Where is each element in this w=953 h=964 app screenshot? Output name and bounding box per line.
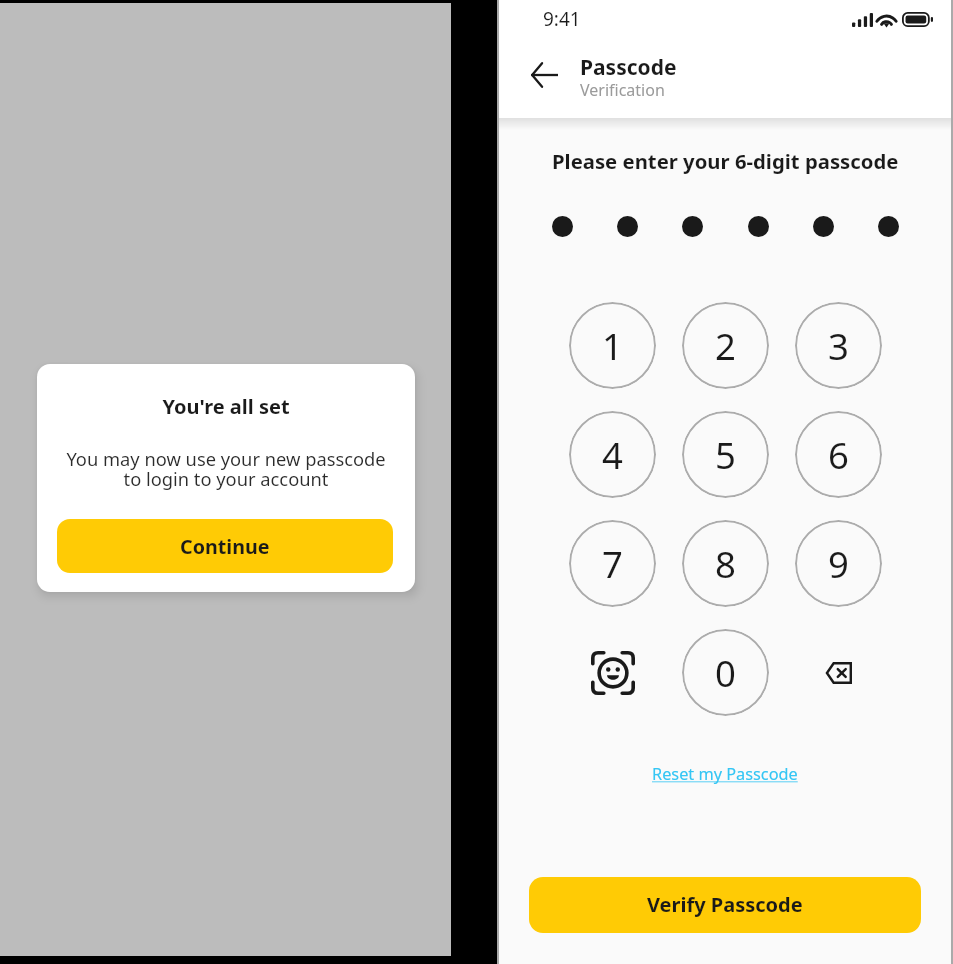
staticText: 9 xyxy=(828,539,849,589)
button[interactable]: 0 xyxy=(682,629,769,716)
staticText: Please enter your 6-digit passcode xyxy=(552,147,899,175)
button[interactable]: Face ID xyxy=(569,629,656,716)
button[interactable]: Backspace xyxy=(795,629,882,716)
staticText: 3 xyxy=(828,321,849,371)
button[interactable]: 1 xyxy=(569,302,656,389)
button[interactable]: 8 xyxy=(682,520,769,607)
staticText: 0 xyxy=(715,648,736,698)
button[interactable]: Verify Passcode xyxy=(529,877,921,933)
button[interactable]: 3 xyxy=(795,302,882,389)
button[interactable]: 6 xyxy=(795,411,882,498)
button[interactable]: 5 xyxy=(682,411,769,498)
staticText: 7 xyxy=(602,539,623,589)
button[interactable]: 2 xyxy=(682,302,769,389)
staticText: 2 xyxy=(715,321,736,371)
staticText: Reset my Passcode xyxy=(652,763,798,785)
button[interactable]: Continue xyxy=(57,519,393,573)
staticText: 5 xyxy=(715,430,736,480)
staticText: 4 xyxy=(602,430,623,480)
staticText: You may now use your new passcode to log… xyxy=(66,446,386,492)
staticText: You're all set xyxy=(162,393,290,420)
button[interactable]: Reset my Passcode xyxy=(652,763,798,785)
staticText: 6 xyxy=(828,430,849,480)
staticText: Verify Passcode xyxy=(647,891,803,918)
button[interactable]: 4 xyxy=(569,411,656,498)
staticText: Continue xyxy=(180,533,270,560)
staticText: 1 xyxy=(602,321,623,371)
button[interactable]: 9 xyxy=(795,520,882,607)
button[interactable]: Back xyxy=(522,53,566,97)
staticText: 8 xyxy=(715,539,736,589)
staticText: Passcode xyxy=(580,53,677,82)
button[interactable]: 7 xyxy=(569,520,656,607)
staticText: 9:41 xyxy=(543,6,581,32)
staticText: Verification xyxy=(580,79,665,101)
